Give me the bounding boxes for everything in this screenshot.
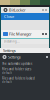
staticText: Settings <box>3 48 16 53</box>
staticText: default <box>2 71 12 75</box>
staticText: File Manager <box>9 31 32 37</box>
button[interactable]: Settings <box>0 53 50 61</box>
button[interactable]: File Manager <box>1 30 49 38</box>
staticText: default <box>2 80 12 84</box>
button[interactable]: Files and folders locked <box>0 76 50 85</box>
staticText: The automatic updates <box>2 62 32 65</box>
staticText: BitLocker <box>9 7 26 13</box>
staticText: Settings <box>8 54 21 60</box>
staticText: Installing... <box>4 40 20 43</box>
button[interactable]: BitLocker <box>1 7 49 13</box>
staticText: Close <box>4 14 14 19</box>
button[interactable]: Close <box>1 13 49 20</box>
button[interactable]: Files and folder sizes <box>0 66 50 76</box>
button[interactable]: The automatic updates <box>0 61 50 66</box>
staticText: Files and folders locked <box>2 77 35 80</box>
staticText: Files and folder sizes <box>2 67 31 71</box>
